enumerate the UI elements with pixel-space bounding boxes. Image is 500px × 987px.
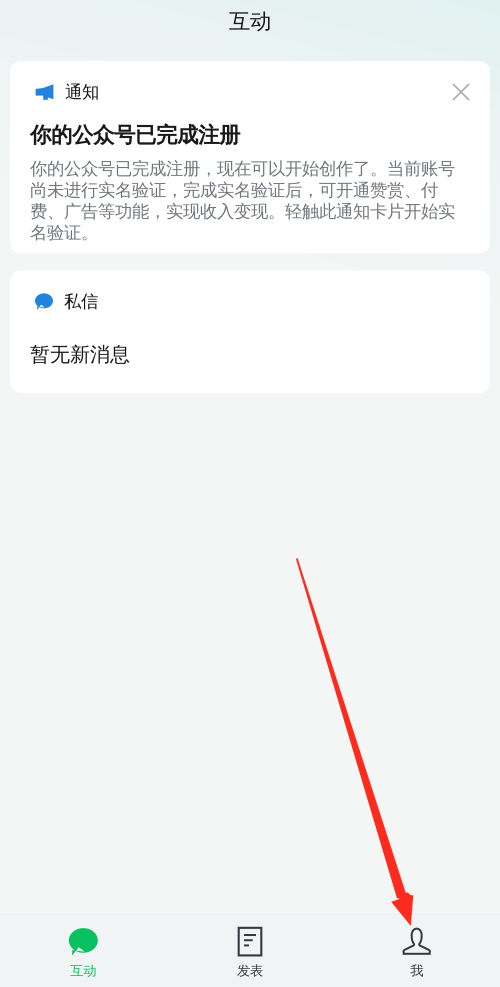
button[interactable]: 发表 — [167, 915, 333, 987]
staticText: 暂无新消息 — [30, 342, 130, 367]
staticText: 你的公众号已完成注册 — [30, 122, 240, 148]
staticText: 我 — [410, 963, 423, 979]
staticText: 私信 — [64, 291, 98, 312]
button[interactable]: 我 — [333, 915, 500, 987]
staticText: 互动 — [229, 8, 271, 35]
button[interactable]: 通知 — [10, 61, 490, 253]
button[interactable]: 互动 — [0, 915, 167, 987]
staticText: 你的公众号已完成注册，现在可以开始创作了。当前账号尚未进行实名验证，完成实名验证… — [30, 158, 455, 243]
staticText: 互动 — [70, 963, 96, 979]
staticText: 发表 — [237, 963, 263, 979]
staticText: 通知 — [65, 81, 99, 103]
button[interactable]: 私信 — [10, 270, 490, 393]
